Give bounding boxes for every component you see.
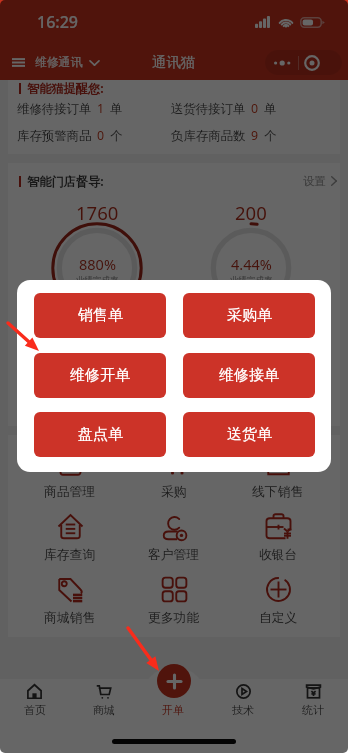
staticText: 业绩完成率	[76, 406, 119, 417]
button[interactable]: 统计	[278, 684, 348, 717]
staticText: 维修待接订单	[17, 101, 92, 117]
staticText: 个	[110, 128, 123, 144]
staticText: 12.5%	[77, 385, 118, 405]
staticText: 35	[86, 331, 108, 353]
button[interactable]: Menu	[4, 50, 108, 75]
staticText: 技术	[232, 703, 254, 717]
staticText: 0	[97, 127, 105, 144]
button[interactable]: 商城	[69, 684, 138, 717]
button[interactable]: 采购	[122, 441, 226, 504]
staticText: 单	[264, 101, 277, 117]
staticText: 盘点单	[78, 425, 123, 444]
button[interactable]: 开单	[138, 684, 208, 717]
button[interactable]: 盘点单	[34, 412, 166, 457]
button[interactable]: 维修开单	[34, 353, 166, 398]
staticText: 维修接单	[219, 366, 279, 385]
staticText: 智能猫提醒您:	[27, 80, 104, 97]
staticText: 商品管理	[44, 484, 96, 500]
staticText: 采购单	[227, 306, 272, 325]
button[interactable]: 线下销售	[226, 441, 330, 504]
button[interactable]: 送货单	[183, 412, 315, 457]
staticText: 送货待接订单	[171, 101, 246, 117]
button[interactable]: New order	[157, 664, 191, 698]
staticText: 负库存商品数	[171, 128, 246, 144]
staticText: 库存查询	[44, 547, 96, 563]
staticText: 0	[251, 100, 259, 117]
button[interactable]: 更多功能	[122, 567, 226, 630]
staticText: 采购	[161, 484, 187, 500]
staticText: 16:29	[37, 11, 78, 33]
button[interactable]: 采购单	[183, 293, 315, 338]
button[interactable]: 收银台	[226, 504, 330, 567]
staticText: 开单	[162, 703, 184, 717]
button[interactable]: 维修接单	[183, 353, 315, 398]
staticText: 首页	[24, 703, 46, 717]
other: Menu	[12, 58, 25, 67]
button[interactable]: 设置	[300, 172, 340, 190]
button[interactable]: 销售单	[34, 293, 166, 338]
staticText: 1760	[76, 200, 119, 222]
staticText: 880%	[79, 254, 116, 274]
button[interactable]: 客户管理	[122, 504, 226, 567]
staticText: 业绩完成率	[230, 275, 273, 286]
staticText: 收银台	[259, 547, 298, 563]
button[interactable]: 首页	[0, 684, 69, 717]
staticText: 个	[264, 128, 277, 144]
staticText: 设置	[303, 174, 326, 188]
button[interactable]: 库存查询	[18, 504, 122, 567]
other: Record	[304, 55, 320, 71]
button[interactable]: 商城销售	[18, 567, 122, 630]
staticText: 200	[235, 200, 267, 222]
staticText: 18	[240, 331, 262, 353]
staticText: 商城	[93, 703, 115, 717]
staticText: 单	[110, 101, 123, 117]
button[interactable]: More options	[265, 50, 342, 75]
staticText: 1	[97, 100, 105, 117]
staticText: 维修通讯	[35, 55, 83, 70]
staticText: 维修开单	[70, 366, 130, 385]
staticText: 4.44%	[231, 254, 272, 274]
staticText: 商城销售	[44, 610, 96, 626]
staticText: 9	[251, 127, 259, 144]
other: More options	[274, 59, 291, 67]
staticText: 客户管理	[148, 547, 200, 563]
staticText: 业绩完成率	[230, 406, 273, 417]
staticText: 线下销售	[252, 484, 304, 500]
staticText: 智能门店督导:	[27, 173, 104, 190]
staticText: 统计	[302, 703, 324, 717]
staticText: 更多功能	[148, 610, 200, 626]
staticText: 6.20%	[231, 385, 272, 405]
staticText: 通讯猫	[152, 53, 196, 71]
staticText: 自定义	[259, 610, 298, 626]
button[interactable]: 商品管理	[18, 441, 122, 504]
staticText: 业绩完成率	[76, 275, 119, 286]
button[interactable]: 技术	[208, 684, 278, 717]
staticText: 销售单	[78, 306, 123, 325]
button[interactable]: 自定义	[226, 567, 330, 630]
staticText: 送货单	[227, 425, 272, 444]
staticText: 库存预警商品	[17, 128, 92, 144]
